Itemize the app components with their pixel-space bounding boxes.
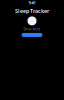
staticText: Sleep Tracker xyxy=(15,7,49,14)
staticText: Deep sleep xyxy=(23,27,40,31)
staticText: 9:41 xyxy=(28,0,35,5)
